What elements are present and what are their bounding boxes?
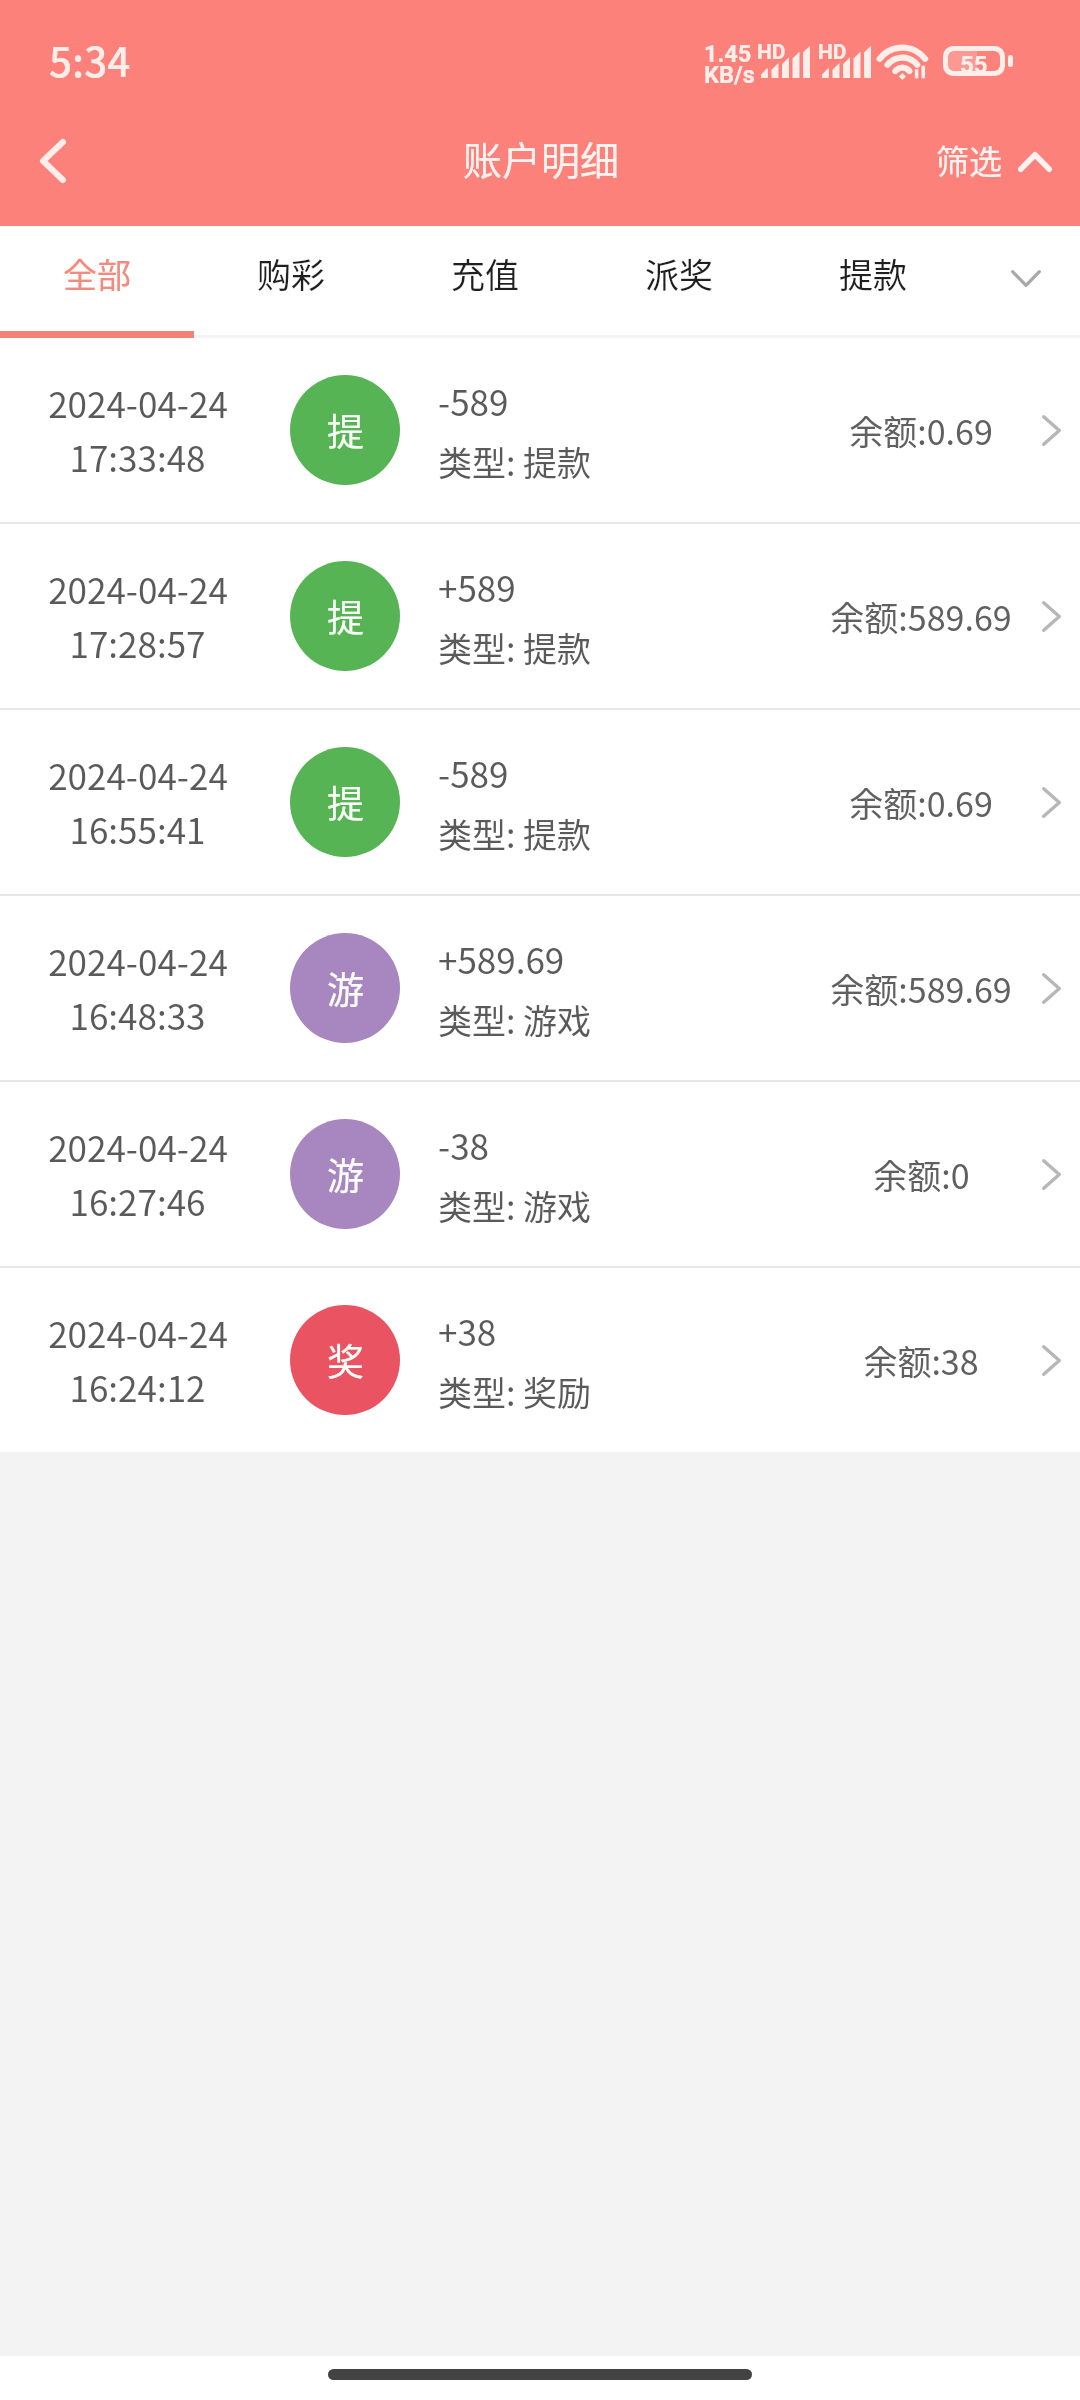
button[interactable]: 2024-04-24 [0,524,1080,708]
staticText: 余额:0 [873,1150,970,1199]
staticText: 购彩 [257,249,325,298]
staticText: 提款 [839,249,907,298]
staticText: -589 [438,747,509,798]
staticText: +589 [438,561,516,612]
button[interactable]: 购彩 [194,226,388,338]
staticText: -38 [438,1119,489,1170]
staticText: 2024-04-24 [48,563,228,614]
button[interactable]: 2024-04-24 [0,1268,1080,1452]
staticText: 游 [327,961,364,1015]
button[interactable]: 派奖 [582,226,776,338]
staticText: 类型: 提款 [438,809,592,858]
staticText: +38 [438,1305,497,1356]
staticText: 16:55:41 [69,803,206,854]
staticText: 类型: 游戏 [438,995,592,1044]
staticText: 余额:589.69 [830,592,1012,641]
button[interactable]: 2024-04-24 [0,896,1080,1080]
staticText: 奖 [327,1333,364,1387]
staticText: 余额:0.69 [849,778,993,827]
staticText: 1.45 [704,40,752,68]
staticText: 5:34 [49,30,131,89]
staticText: KB/s [704,61,755,89]
staticText: 充值 [451,249,519,298]
staticText: 提 [327,775,364,829]
staticText: HD [757,40,786,65]
staticText: 16:48:33 [69,989,206,1040]
staticText: 派奖 [645,249,713,298]
staticText: 全部 [63,249,131,298]
button[interactable]: More filters [970,226,1080,338]
staticText: 17:28:57 [69,617,206,668]
button[interactable]: 提款 [776,226,970,338]
button[interactable]: 筛选 [918,118,1070,202]
staticText: 16:24:12 [69,1361,206,1412]
staticText: 55 [960,51,988,71]
staticText: 余额:38 [863,1336,979,1385]
button[interactable]: 全部 [0,226,194,338]
staticText: 提 [327,403,364,457]
button[interactable]: 2024-04-24 [0,710,1080,894]
staticText: 2024-04-24 [48,1121,228,1172]
staticText: -589 [438,375,509,426]
staticText: 2024-04-24 [48,377,228,428]
staticText: 游 [327,1147,364,1201]
staticText: 余额:589.69 [830,964,1012,1013]
staticText: 类型: 奖励 [438,1367,592,1416]
button[interactable]: 2024-04-24 [0,1082,1080,1266]
staticText: 筛选 [936,136,1002,184]
staticText: 17:33:48 [69,431,206,482]
staticText: +589.69 [438,933,565,984]
staticText: 16:27:46 [69,1175,206,1226]
staticText: 余额:0.69 [849,406,993,455]
staticText: 2024-04-24 [48,749,228,800]
button[interactable]: Back [7,115,99,207]
staticText: 提 [327,589,364,643]
staticText: 类型: 提款 [438,623,592,672]
staticText: 类型: 提款 [438,437,592,486]
staticText: 2024-04-24 [48,935,228,986]
staticText: HD [818,40,847,65]
button[interactable]: 2024-04-24 [0,338,1080,522]
staticText: 账户明细 [463,130,620,186]
staticText: 类型: 游戏 [438,1181,592,1230]
button[interactable]: 充值 [388,226,582,338]
staticText: 2024-04-24 [48,1307,228,1358]
